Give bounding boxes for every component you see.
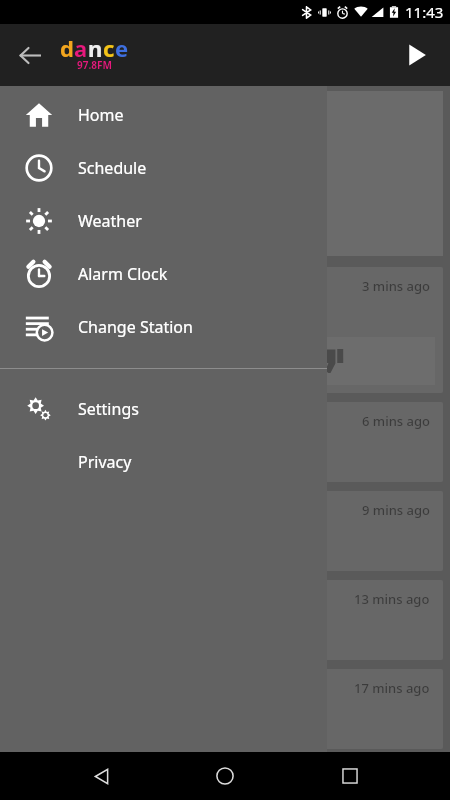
- staticText: 9 mins ago: [362, 501, 430, 519]
- button[interactable]: 6 mins ago: [7, 402, 443, 482]
- button[interactable]: 9 mins ago: [7, 491, 443, 571]
- button[interactable]: 3 mins ago: [7, 267, 443, 393]
- staticText: e: [115, 33, 129, 63]
- staticText: 17 mins ago: [354, 679, 430, 697]
- staticText: 6 mins ago: [362, 412, 430, 430]
- staticText: d: [60, 33, 74, 63]
- staticText: a: [74, 33, 88, 63]
- staticText: c: [103, 33, 115, 63]
- button[interactable]: Settings: [0, 382, 327, 435]
- button[interactable]: Home: [0, 88, 327, 141]
- staticText: Home: [78, 104, 124, 126]
- button[interactable]: Schedule: [0, 141, 327, 194]
- staticText: n: [88, 33, 103, 63]
- button[interactable]: Play: [392, 31, 440, 79]
- staticText: Alarm Clock: [78, 263, 168, 285]
- button[interactable]: Thumbs down: [226, 337, 435, 385]
- staticText: 11:43: [405, 2, 444, 22]
- button[interactable]: 17 mins ago: [7, 669, 443, 749]
- button[interactable]: Thumbs up: [15, 337, 224, 385]
- button[interactable]: Back: [6, 31, 54, 79]
- staticText: 13 mins ago: [354, 590, 430, 608]
- button[interactable]: Privacy: [0, 435, 327, 488]
- button[interactable]: Home: [201, 752, 249, 800]
- staticText: Change Station: [78, 316, 193, 338]
- button[interactable]: Alarm Clock: [0, 247, 327, 300]
- button[interactable]: Change Station: [0, 300, 327, 353]
- staticText: Weather: [78, 210, 142, 232]
- button[interactable]: 13 mins ago: [7, 580, 443, 660]
- staticText: 97.8FM: [77, 58, 112, 72]
- staticText: Schedule: [78, 157, 147, 179]
- button[interactable]: Recent apps: [326, 752, 374, 800]
- staticText: Privacy: [78, 451, 132, 473]
- staticText: Settings: [78, 398, 139, 420]
- staticText: 3 mins ago: [362, 277, 430, 295]
- button[interactable]: Back: [77, 752, 125, 800]
- button[interactable]: Weather: [0, 194, 327, 247]
